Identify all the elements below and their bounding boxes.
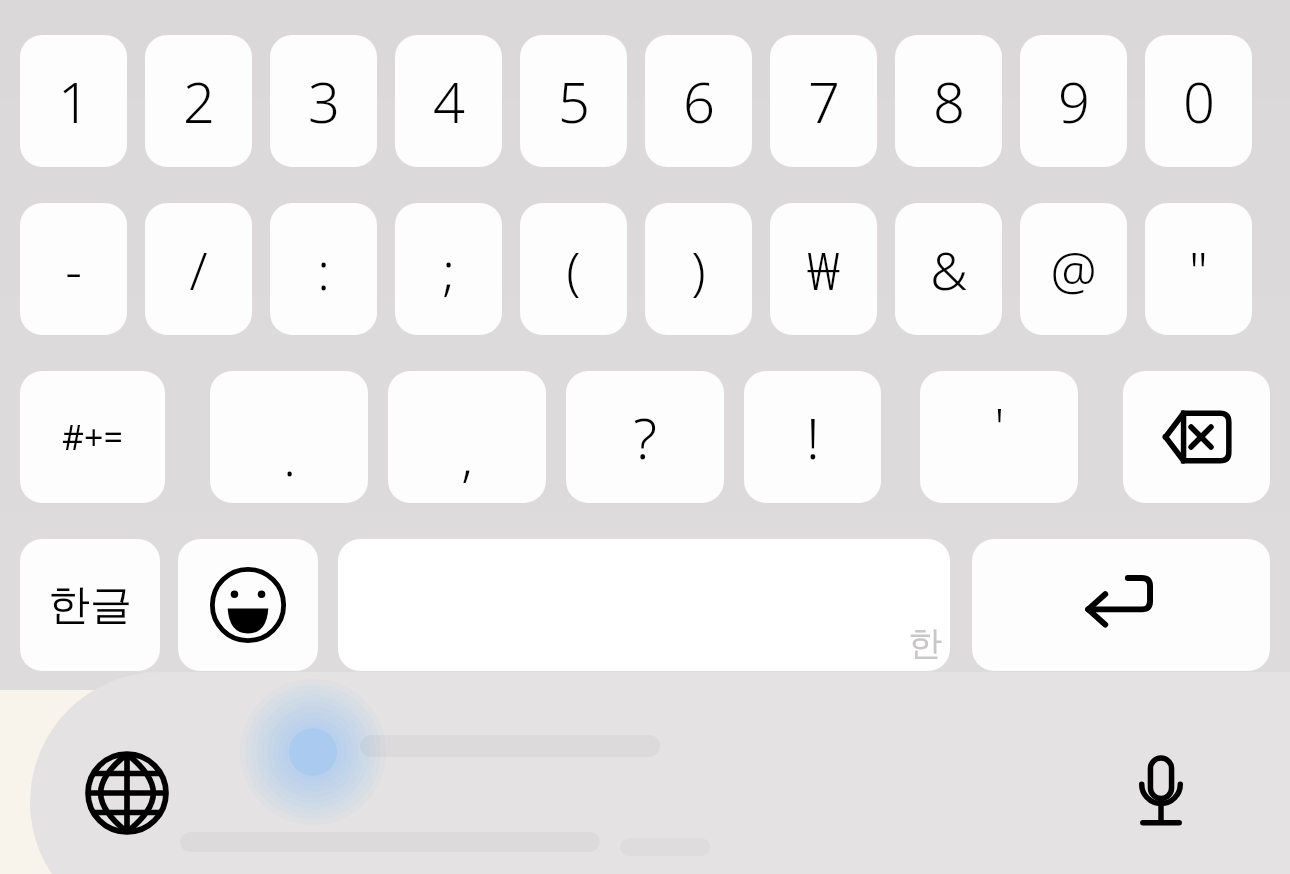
staticText: ( [566, 234, 581, 305]
staticText: 4 [433, 63, 465, 139]
button[interactable]: ₩ [770, 203, 877, 335]
button[interactable]: " [1145, 203, 1252, 335]
staticText: , [461, 420, 473, 491]
staticText: ; [442, 234, 455, 305]
staticText: 9 [1058, 63, 1090, 139]
staticText: ! [806, 399, 820, 475]
staticText: 7 [808, 63, 840, 139]
staticText: 5 [558, 63, 590, 139]
staticText: ) [691, 234, 706, 305]
staticText: 6 [683, 63, 715, 139]
button[interactable]: 9 [1020, 35, 1127, 167]
button[interactable]: Space [338, 539, 950, 671]
button[interactable]: / [145, 203, 252, 335]
staticText: ₩ [807, 234, 840, 305]
button[interactable]: 7 [770, 35, 877, 167]
staticText: : [317, 234, 330, 305]
button[interactable]: 5 [520, 35, 627, 167]
button[interactable]: ) [645, 203, 752, 335]
button[interactable]: 2 [145, 35, 252, 167]
staticText: & [930, 234, 968, 305]
button[interactable]: ( [520, 203, 627, 335]
button[interactable]: , [388, 371, 546, 503]
staticText: - [65, 234, 82, 305]
button[interactable]: Korean [20, 539, 160, 671]
staticText: . [283, 420, 296, 491]
staticText: / [189, 234, 208, 305]
staticText: #+= [62, 414, 123, 460]
button[interactable]: ? [566, 371, 724, 503]
staticText: 2 [183, 63, 215, 139]
staticText: ? [633, 399, 657, 475]
staticText: ' [994, 390, 1005, 461]
button[interactable]: 4 [395, 35, 502, 167]
button[interactable]: ! [744, 371, 881, 503]
button[interactable]: ; [395, 203, 502, 335]
button[interactable]: @ [1020, 203, 1127, 335]
button[interactable]: 3 [270, 35, 377, 167]
staticText: 0 [1183, 63, 1215, 139]
button[interactable]: Backspace [1123, 371, 1270, 503]
button[interactable]: - [20, 203, 127, 335]
button[interactable]: : [270, 203, 377, 335]
button[interactable]: . [210, 371, 368, 503]
button[interactable]: ' [920, 371, 1078, 503]
button[interactable]: & [895, 203, 1002, 335]
staticText: 3 [308, 63, 340, 139]
button[interactable]: 8 [895, 35, 1002, 167]
staticText: 8 [933, 63, 965, 139]
button[interactable]: Dictation [1109, 741, 1213, 845]
staticText: 한 [908, 622, 942, 665]
button[interactable]: Return [972, 539, 1270, 671]
button[interactable]: Switch keyboard [75, 741, 179, 845]
button[interactable]: 0 [1145, 35, 1252, 167]
staticText: 1 [58, 63, 90, 139]
staticText: @ [1050, 234, 1097, 305]
button[interactable]: 6 [645, 35, 752, 167]
button[interactable]: Emoji [178, 539, 318, 671]
button[interactable]: Symbols [20, 371, 165, 503]
staticText: " [1189, 234, 1208, 305]
staticText: 한글 [48, 579, 132, 632]
button[interactable]: 1 [20, 35, 127, 167]
